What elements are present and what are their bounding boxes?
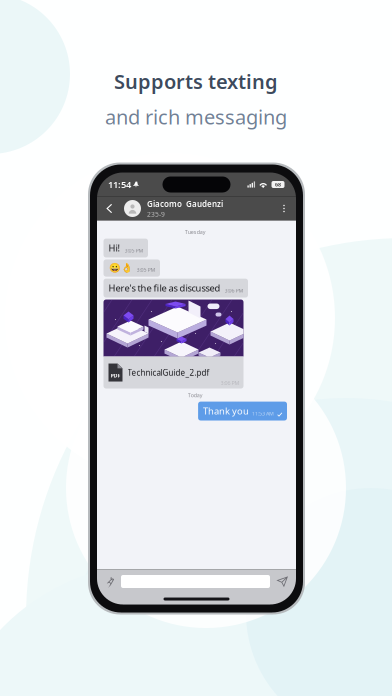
staticText: Thank you: [203, 405, 249, 417]
staticText: 3:06 PM: [220, 379, 239, 387]
staticText: 11:54: [108, 178, 131, 191]
staticText: Supports texting: [114, 68, 278, 95]
staticText: TechnicalGuide_2.pdf: [127, 367, 209, 378]
staticText: Today: [188, 391, 203, 399]
staticText: 3:05 PM: [124, 247, 143, 254]
staticText: 3:05 PM: [136, 266, 155, 273]
staticText: 68: [275, 181, 281, 188]
staticText: 😀👌: [108, 262, 132, 273]
button[interactable]: Back: [103, 196, 116, 220]
staticText: Hi!: [108, 242, 120, 254]
staticText: 11:53 AM: [252, 410, 274, 417]
staticText: 3:06 PM: [224, 287, 243, 294]
button[interactable]: Send: [276, 572, 289, 590]
staticText: Giacomo Gaudenzi: [147, 198, 223, 209]
staticText: and rich messaging: [105, 104, 287, 130]
staticText: Tuesday: [185, 228, 206, 236]
button[interactable]: More options: [278, 196, 290, 220]
staticText: PDF: [110, 372, 120, 379]
staticText: Here's the file as discussed: [108, 282, 220, 294]
button[interactable]: Attach file: [104, 572, 117, 590]
staticText: 235-9: [147, 210, 165, 218]
